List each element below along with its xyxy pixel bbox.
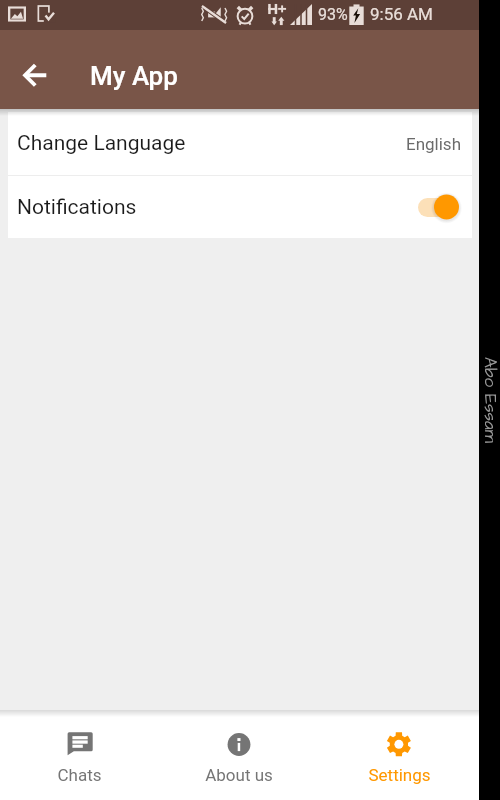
staticText: Chats <box>57 765 102 785</box>
staticText: Abo Essam <box>478 350 500 450</box>
staticText: Settings <box>368 765 431 785</box>
staticText: My App <box>90 61 178 91</box>
staticText: 93% <box>318 5 348 24</box>
button[interactable]: Back <box>13 53 57 97</box>
staticText: About us <box>205 765 273 785</box>
button[interactable]: Notifications toggle <box>417 194 459 220</box>
button[interactable]: Change Language <box>8 112 472 175</box>
staticText: Notifications <box>17 195 137 220</box>
staticText: Change Language <box>17 131 186 156</box>
staticText: 9:56 AM <box>370 4 433 24</box>
button[interactable]: Notifications <box>8 176 472 238</box>
button[interactable]: About us <box>159 710 319 800</box>
button[interactable]: Chats <box>0 710 159 800</box>
staticText: English <box>406 134 462 154</box>
button[interactable]: Settings <box>319 710 479 800</box>
